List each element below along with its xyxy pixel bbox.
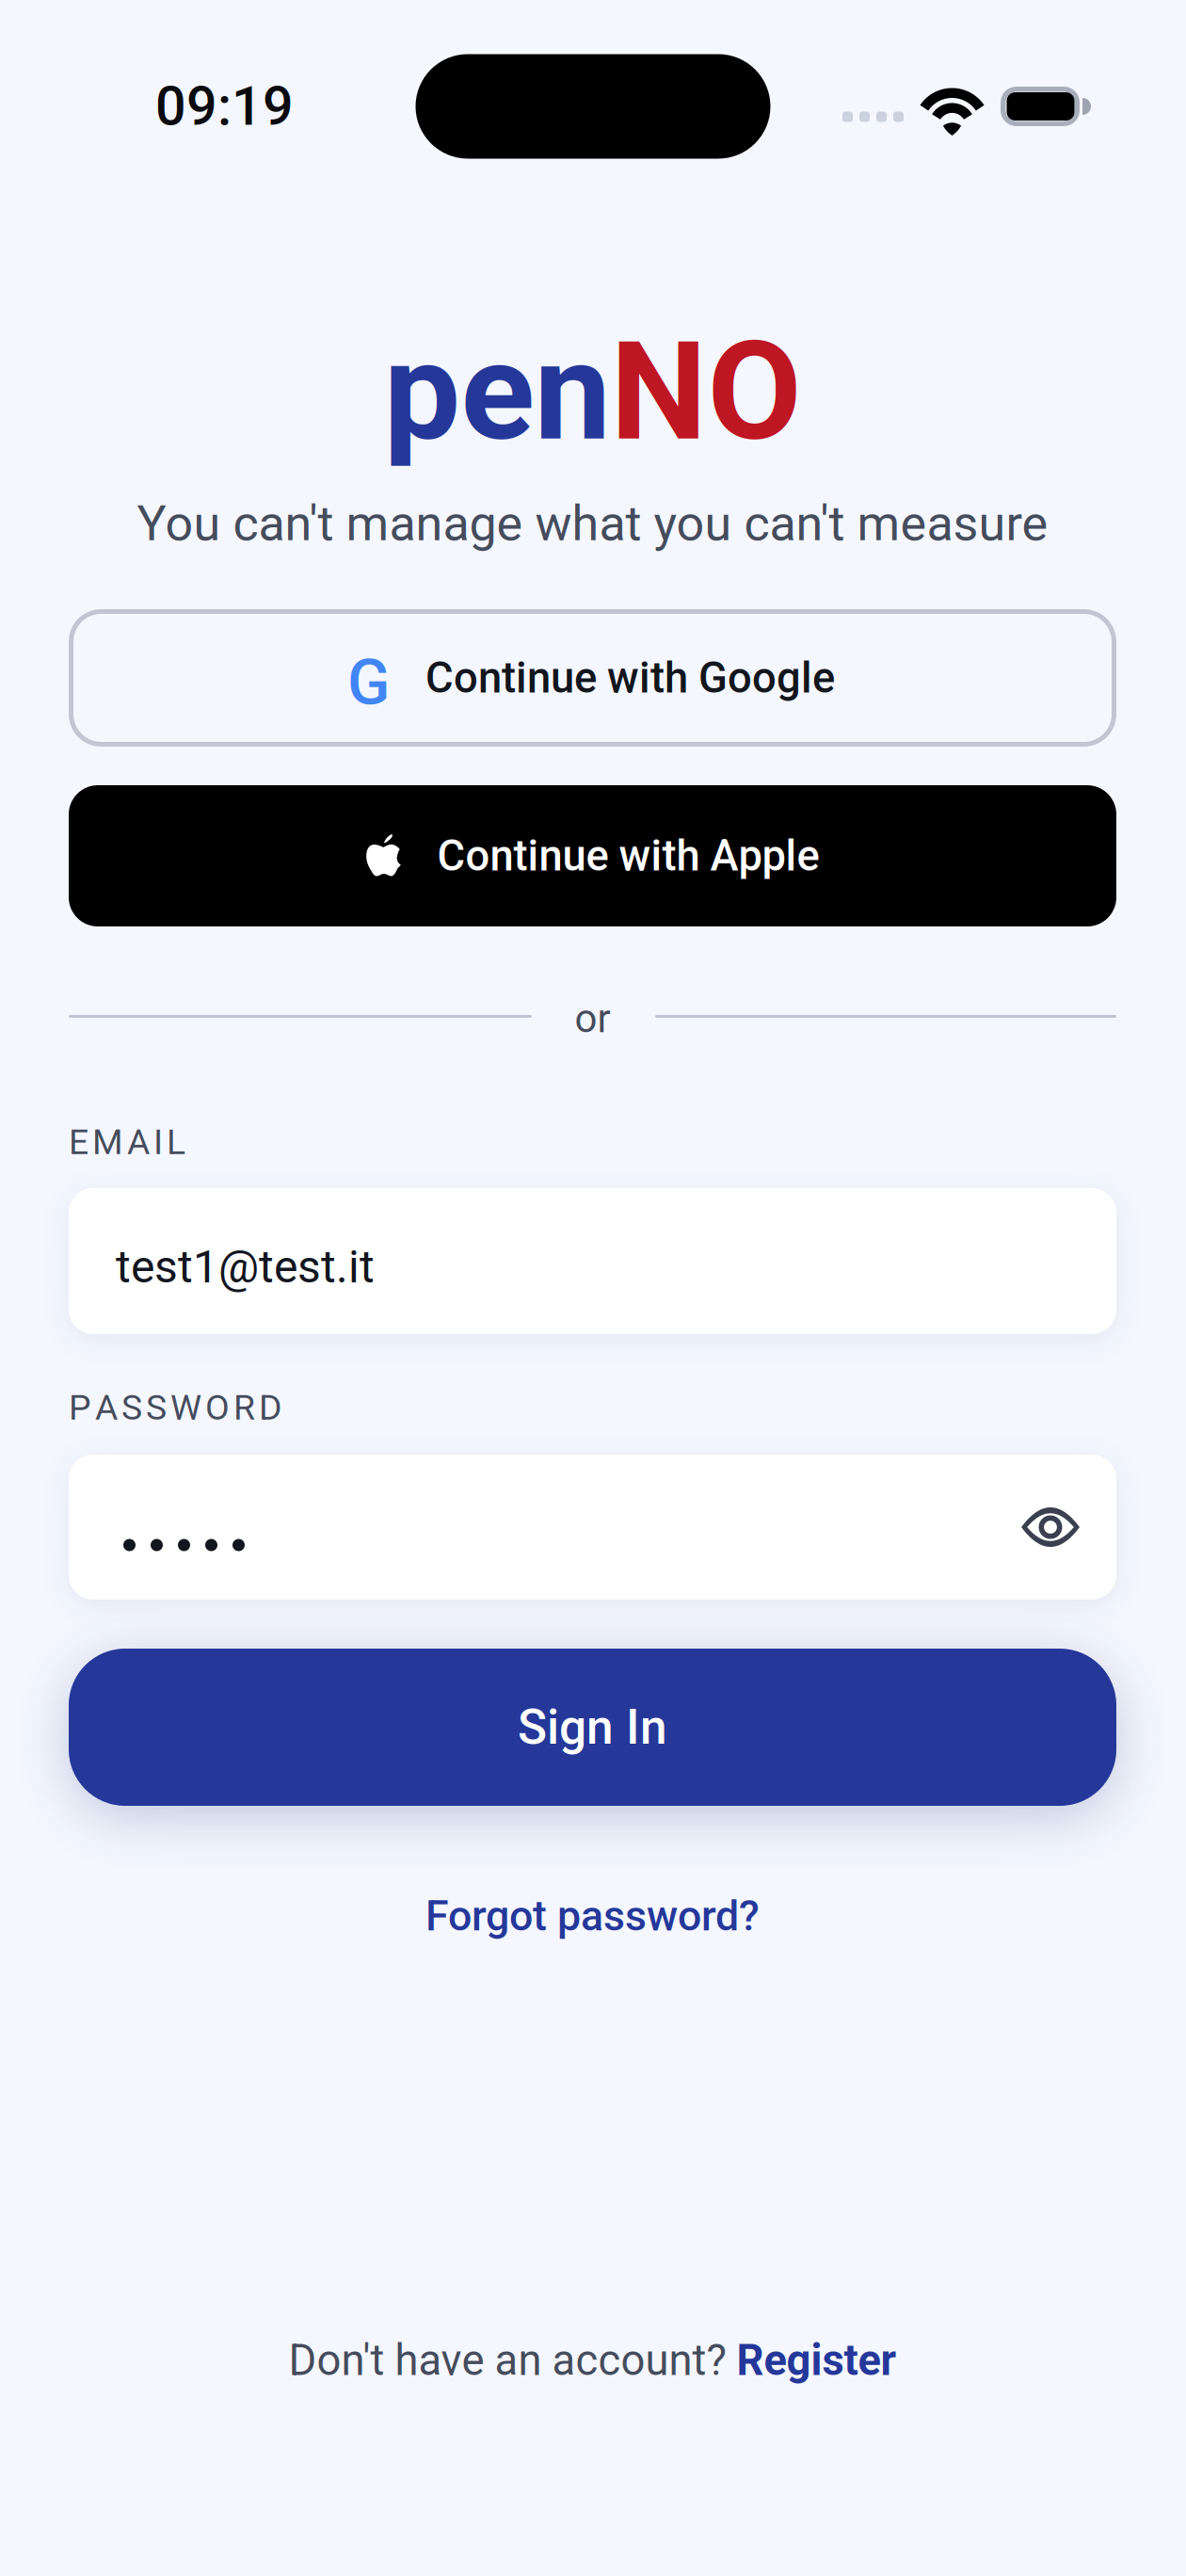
staticText: Continue with Google: [425, 653, 835, 703]
staticText: Continue with Apple: [437, 831, 819, 881]
staticText: P A S S W O R D: [69, 1387, 282, 1428]
staticText: G: [347, 646, 390, 719]
staticText: test1@test.it: [116, 1240, 375, 1293]
button[interactable]: Show password: [1021, 1508, 1080, 1546]
staticText: E M A I L: [69, 1121, 185, 1163]
staticText: NO: [610, 311, 801, 472]
staticText: Forgot password?: [425, 1891, 760, 1941]
staticText: Don't have an account?: [288, 2335, 737, 2385]
button[interactable]: G: [69, 609, 1116, 747]
button[interactable]: Sign In: [69, 1649, 1116, 1806]
button[interactable]: Forgot password?: [425, 1894, 760, 1938]
button[interactable]: Continue with Apple: [69, 785, 1116, 926]
staticText: pen: [384, 311, 610, 472]
staticText: or: [575, 996, 610, 1042]
staticText: Sign In: [518, 1699, 667, 1756]
button[interactable]: Register: [737, 2335, 897, 2385]
staticText: You can't manage what you can't measure: [137, 495, 1048, 552]
staticText: 09:19: [155, 75, 294, 138]
staticText: Register: [737, 2335, 897, 2385]
